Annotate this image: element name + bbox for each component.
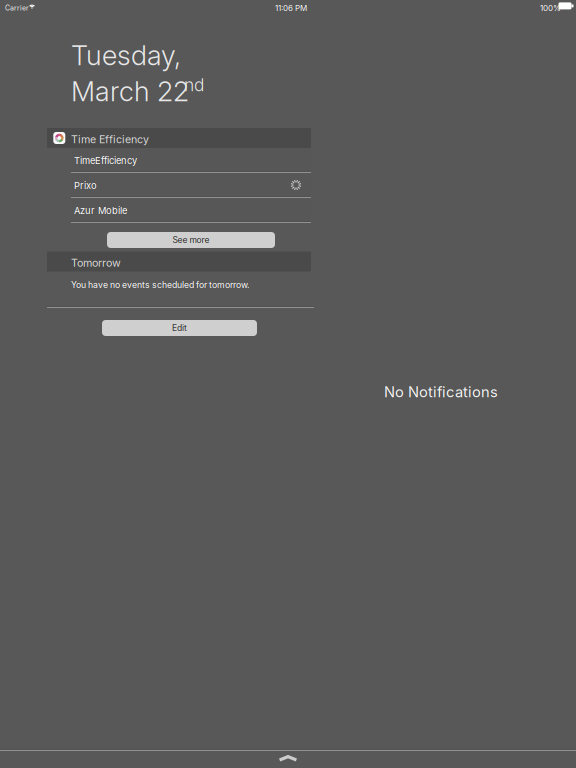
button[interactable]: Prixo [71, 173, 311, 198]
staticText: You have no events scheduled for tomorro… [71, 279, 249, 290]
staticText: Tomorrow [71, 256, 121, 269]
staticText: No Notifications [384, 383, 498, 401]
staticText: Carrier [5, 4, 29, 12]
button[interactable]: TimeEfficiency [71, 148, 311, 173]
staticText: Prixo [74, 180, 97, 191]
staticText: Azur Mobile [74, 205, 127, 216]
staticText: March 22 [71, 75, 189, 108]
staticText: TimeEfficiency [74, 155, 137, 166]
button[interactable]: Azur Mobile [71, 198, 311, 223]
staticText: Time Efficiency [71, 133, 149, 146]
staticText: See more [172, 235, 209, 245]
staticText: 100% [540, 3, 561, 13]
staticText: Tuesday, [71, 39, 181, 72]
button[interactable]: See more [107, 232, 275, 248]
staticText: Edit [172, 323, 187, 333]
button[interactable]: Edit [102, 320, 257, 336]
staticText: 11:06 PM [275, 3, 307, 13]
staticText: nd [184, 74, 204, 95]
